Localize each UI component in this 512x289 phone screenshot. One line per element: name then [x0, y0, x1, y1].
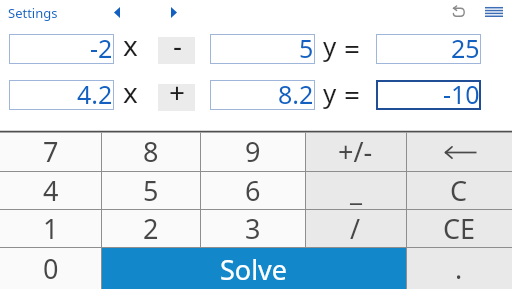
- button[interactable]: CE: [406, 210, 512, 248]
- staticText: Settings: [8, 4, 58, 22]
- button[interactable]: +: [158, 84, 195, 111]
- staticText: C: [450, 172, 468, 209]
- button[interactable]: [406, 133, 512, 172]
- button[interactable]: [171, 7, 177, 18]
- button[interactable]: 4: [0, 172, 101, 210]
- button[interactable]: C: [406, 172, 512, 210]
- button[interactable]: 8: [101, 133, 200, 172]
- button[interactable]: Solve: [101, 248, 406, 289]
- staticText: +/-: [338, 133, 373, 170]
- button[interactable]: 9: [200, 133, 305, 172]
- button[interactable]: _: [305, 172, 406, 210]
- button[interactable]: 7: [0, 133, 101, 172]
- staticText: x: [123, 73, 138, 111]
- button[interactable]: -2: [9, 34, 114, 64]
- staticText: 6: [245, 172, 261, 209]
- staticText: -10: [443, 77, 480, 107]
- staticText: CE: [443, 210, 476, 247]
- staticText: 1: [43, 210, 59, 247]
- staticText: =: [344, 29, 361, 67]
- button[interactable]: 5: [210, 34, 315, 64]
- staticText: =: [344, 75, 361, 113]
- staticText: y: [323, 28, 337, 63]
- staticText: 9: [245, 133, 261, 170]
- button[interactable]: -: [158, 37, 195, 64]
- button[interactable]: -10: [376, 80, 481, 110]
- button[interactable]: +/-: [305, 133, 406, 172]
- button[interactable]: 3: [200, 210, 305, 248]
- button[interactable]: 25: [376, 34, 481, 64]
- button[interactable]: /: [305, 210, 406, 248]
- staticText: 8.2: [278, 77, 314, 107]
- staticText: _: [350, 172, 362, 209]
- staticText: y: [323, 75, 337, 110]
- button[interactable]: Settings: [8, 4, 58, 22]
- staticText: /: [350, 210, 361, 247]
- staticText: 25: [451, 31, 480, 61]
- button[interactable]: 4.2: [9, 80, 114, 110]
- button[interactable]: 6: [200, 172, 305, 210]
- staticText: 2: [143, 210, 159, 247]
- staticText: 5: [299, 31, 314, 61]
- staticText: -2: [90, 31, 113, 61]
- staticText: 4.2: [77, 77, 113, 107]
- button[interactable]: [451, 6, 465, 19]
- staticText: 3: [245, 210, 261, 247]
- button[interactable]: [114, 7, 120, 18]
- staticText: 7: [43, 133, 59, 170]
- staticText: -: [173, 26, 183, 53]
- staticText: 4: [43, 172, 59, 209]
- staticText: 5: [143, 172, 159, 209]
- staticText: x: [123, 26, 138, 64]
- button[interactable]: 1: [0, 210, 101, 248]
- button[interactable]: .: [406, 248, 512, 289]
- button[interactable]: 2: [101, 210, 200, 248]
- button[interactable]: 5: [101, 172, 200, 210]
- button[interactable]: 0: [0, 248, 101, 289]
- staticText: Solve: [220, 251, 288, 288]
- button[interactable]: [485, 7, 503, 17]
- button[interactable]: 8.2: [210, 80, 315, 110]
- staticText: .: [455, 250, 463, 287]
- staticText: 8: [143, 133, 159, 170]
- staticText: +: [169, 73, 186, 100]
- staticText: 0: [43, 250, 59, 287]
